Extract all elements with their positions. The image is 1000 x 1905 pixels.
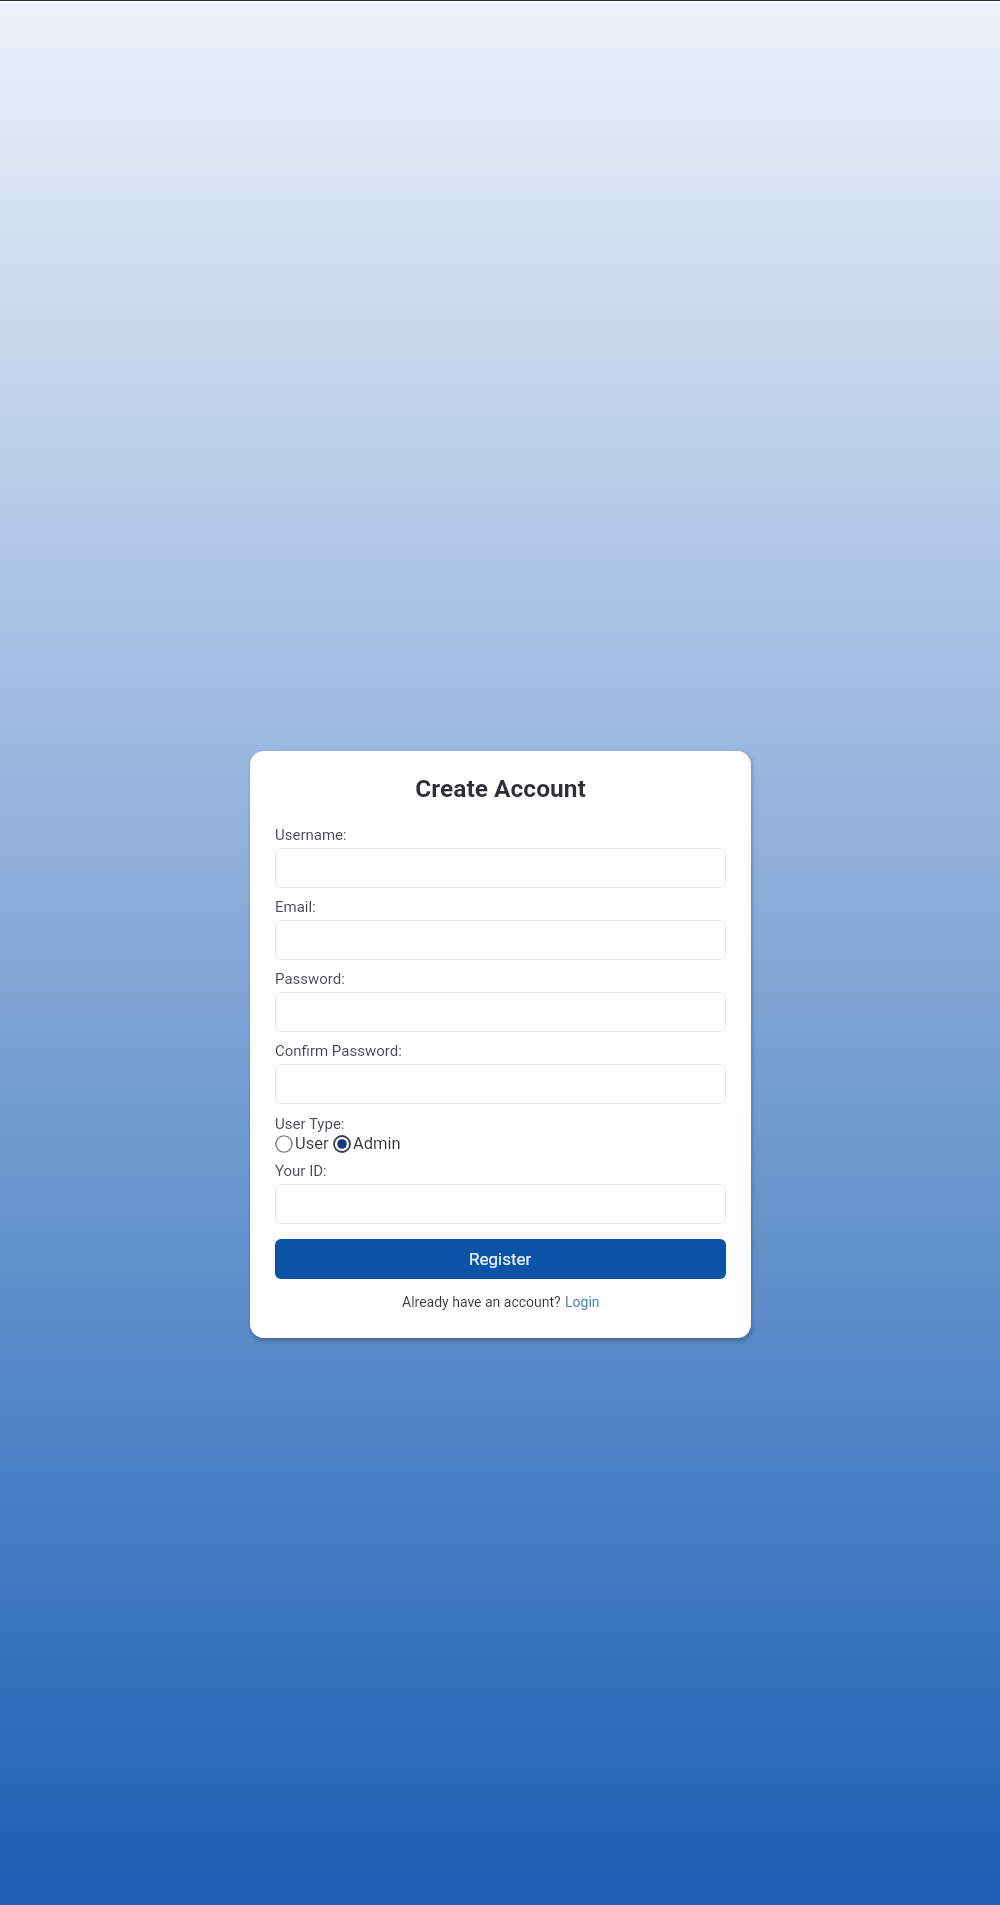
button[interactable]: Admin <box>333 1134 401 1153</box>
staticText: Password: <box>275 970 345 988</box>
staticText: User <box>295 1134 329 1153</box>
button[interactable]: Password <box>275 992 726 1032</box>
staticText: Admin <box>353 1134 401 1153</box>
staticText: Register <box>469 1249 532 1269</box>
button[interactable]: User <box>275 1134 329 1153</box>
staticText: Already have an account? <box>402 1294 565 1310</box>
button[interactable]: Confirm Password <box>275 1064 726 1104</box>
staticText: Your ID: <box>275 1162 327 1180</box>
staticText: Create Account <box>275 774 726 803</box>
button[interactable]: Your ID <box>275 1184 726 1224</box>
button[interactable]: Login <box>565 1294 600 1310</box>
button[interactable]: Email <box>275 920 726 960</box>
button[interactable]: Username <box>275 848 726 888</box>
staticText: Username: <box>275 826 347 844</box>
staticText: User Type: <box>275 1115 345 1133</box>
staticText: Email: <box>275 898 316 916</box>
staticText: Confirm Password: <box>275 1042 402 1060</box>
button[interactable]: Register <box>275 1239 726 1279</box>
